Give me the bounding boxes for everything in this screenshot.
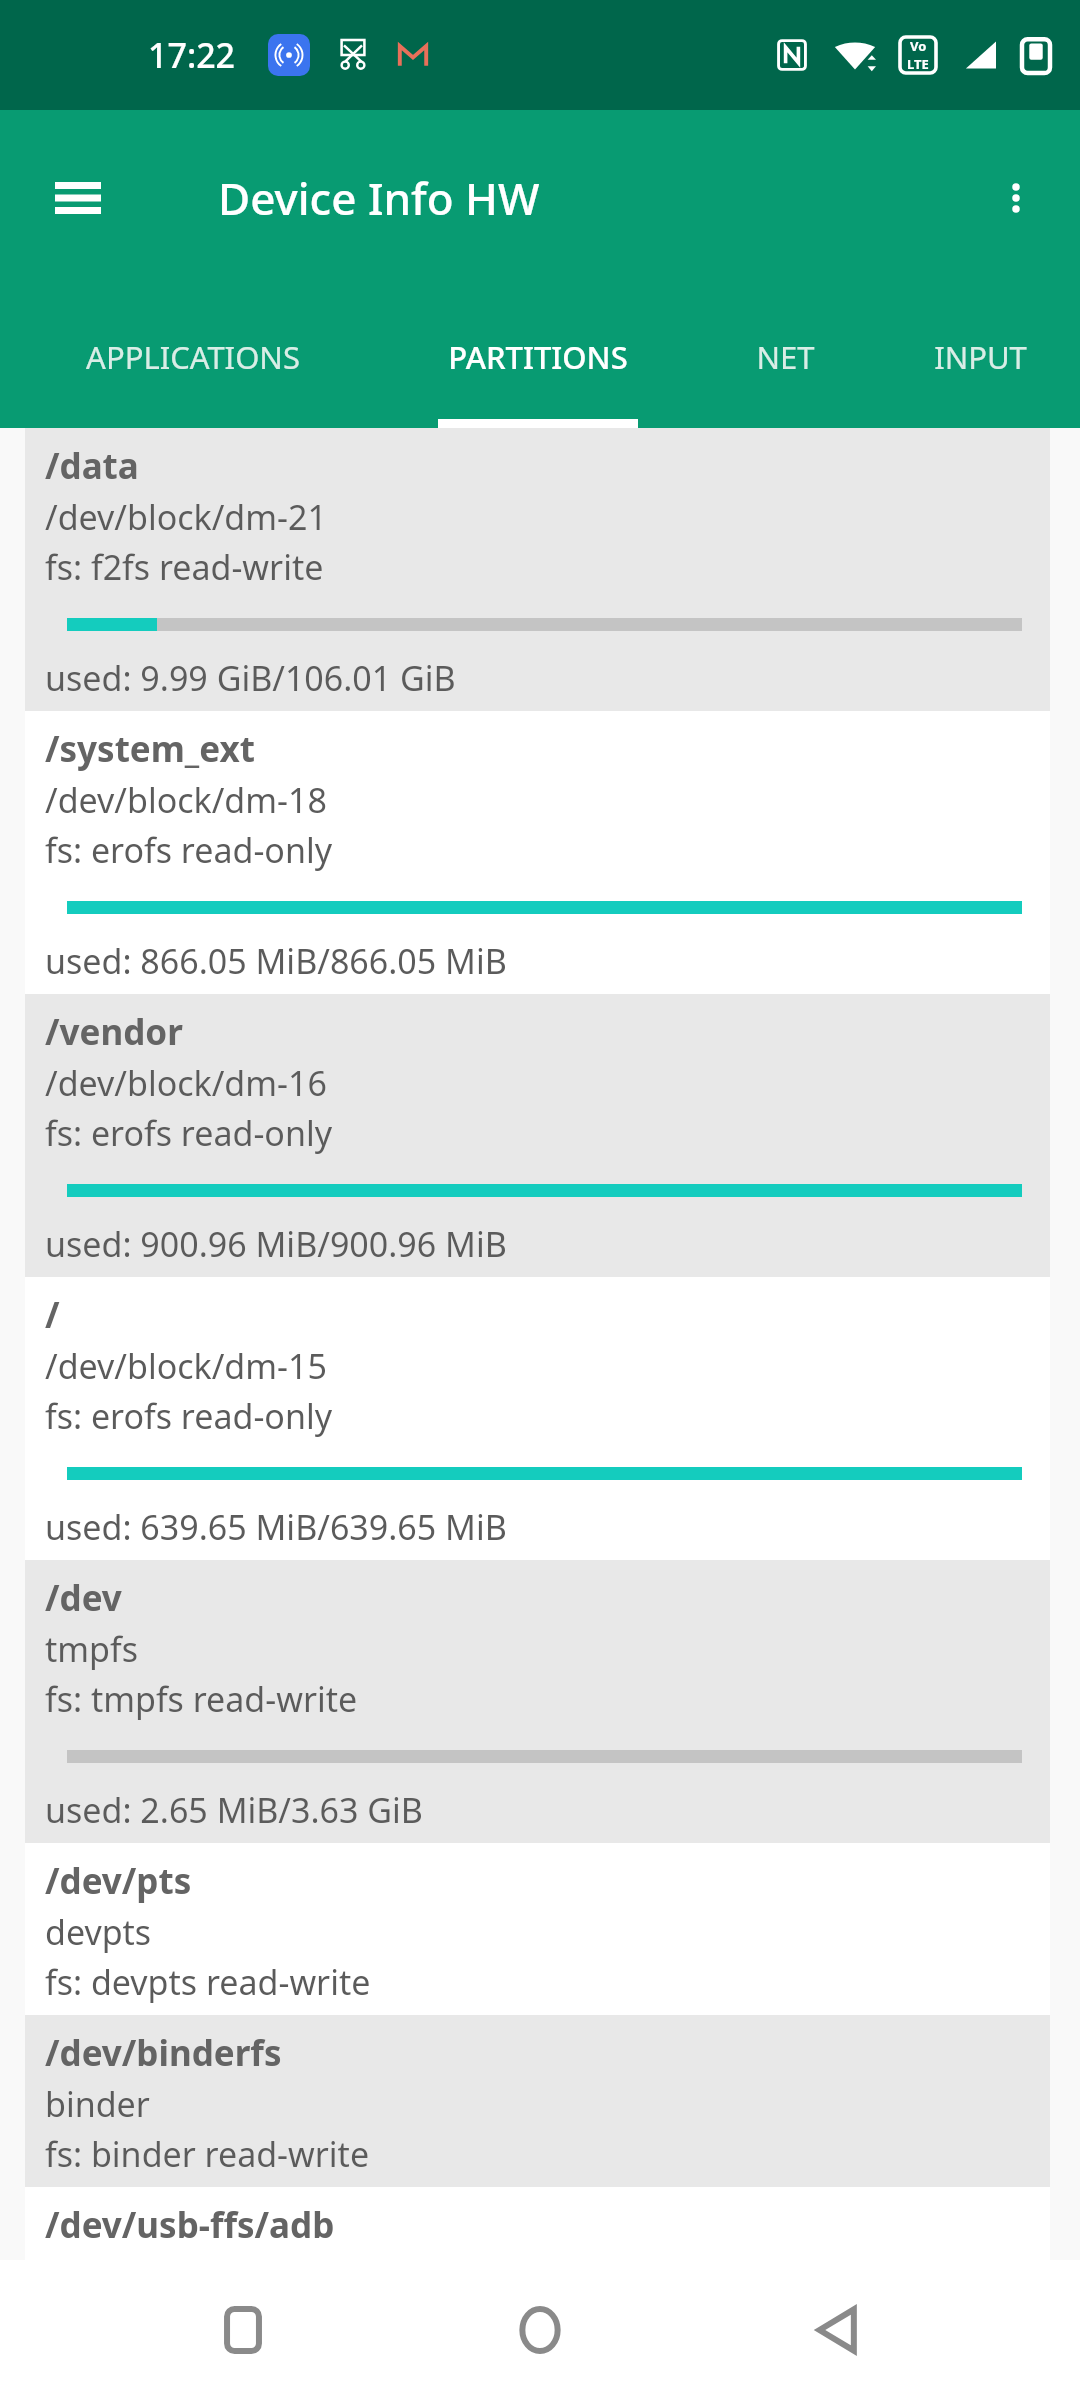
- staticText: /: [45, 1291, 60, 1339]
- staticText: used: 9.99 GiB/106.01 GiB: [45, 655, 456, 701]
- staticText: fs: f2fs read-write: [45, 544, 324, 590]
- staticText: Device Info HW: [218, 168, 540, 228]
- button[interactable]: /vendor: [25, 994, 1050, 1277]
- staticText: /dev/block/dm-16: [45, 1060, 327, 1106]
- button[interactable]: More options: [980, 162, 1052, 234]
- button[interactable]: /dev: [25, 1560, 1050, 1843]
- button[interactable]: Home: [485, 2275, 595, 2385]
- staticText: PARTITIONS: [448, 336, 628, 378]
- staticText: fs: erofs read-only: [45, 827, 333, 873]
- staticText: tmpfs: [45, 1626, 138, 1672]
- staticText: /dev/usb-ffs/adb: [45, 2201, 335, 2249]
- staticText: APPLICATIONS: [86, 336, 300, 378]
- staticText: Vo: [910, 37, 927, 55]
- staticText: devpts: [45, 1909, 152, 1955]
- staticText: fs: erofs read-only: [45, 1110, 333, 1156]
- button[interactable]: APPLICATIONS: [0, 285, 385, 428]
- button[interactable]: /data: [25, 428, 1050, 711]
- button[interactable]: /dev/binderfs: [25, 2015, 1050, 2187]
- button[interactable]: /dev/usb-ffs/adb: [25, 2187, 1050, 2260]
- staticText: used: 900.96 MiB/900.96 MiB: [45, 1221, 507, 1267]
- button[interactable]: INPUT: [880, 285, 1080, 428]
- button[interactable]: /dev/pts: [25, 1843, 1050, 2015]
- staticText: /dev/block/dm-21: [45, 494, 327, 540]
- button[interactable]: NET: [690, 285, 880, 428]
- staticText: /dev/pts: [45, 1857, 192, 1905]
- staticText: /system_ext: [45, 725, 255, 773]
- staticText: used: 2.65 MiB/3.63 GiB: [45, 1787, 423, 1833]
- staticText: INPUT: [934, 336, 1027, 378]
- staticText: binder: [45, 2081, 150, 2127]
- staticText: NET: [756, 336, 815, 378]
- staticText: /vendor: [45, 1008, 183, 1056]
- button[interactable]: Back: [783, 2275, 893, 2385]
- button[interactable]: /system_ext: [25, 711, 1050, 994]
- staticText: /dev/block/dm-18: [45, 777, 327, 823]
- button[interactable]: PARTITIONS: [385, 285, 690, 428]
- staticText: fs: tmpfs read-write: [45, 1676, 358, 1722]
- staticText: fs: erofs read-only: [45, 1393, 333, 1439]
- staticText: used: 866.05 MiB/866.05 MiB: [45, 938, 507, 984]
- staticText: fs: binder read-write: [45, 2131, 370, 2177]
- staticText: /dev/binderfs: [45, 2029, 282, 2077]
- staticText: used: 639.65 MiB/639.65 MiB: [45, 1504, 507, 1550]
- staticText: fs: devpts read-write: [45, 1959, 371, 2005]
- staticText: /dev: [45, 1574, 122, 1622]
- staticText: /data: [45, 442, 139, 490]
- button[interactable]: /: [25, 1277, 1050, 1560]
- staticText: LTE: [907, 55, 929, 73]
- button[interactable]: Recent apps: [188, 2275, 298, 2385]
- button[interactable]: Open navigation menu: [42, 162, 114, 234]
- staticText: /dev/block/dm-15: [45, 1343, 327, 1389]
- staticText: 17:22: [148, 32, 236, 78]
